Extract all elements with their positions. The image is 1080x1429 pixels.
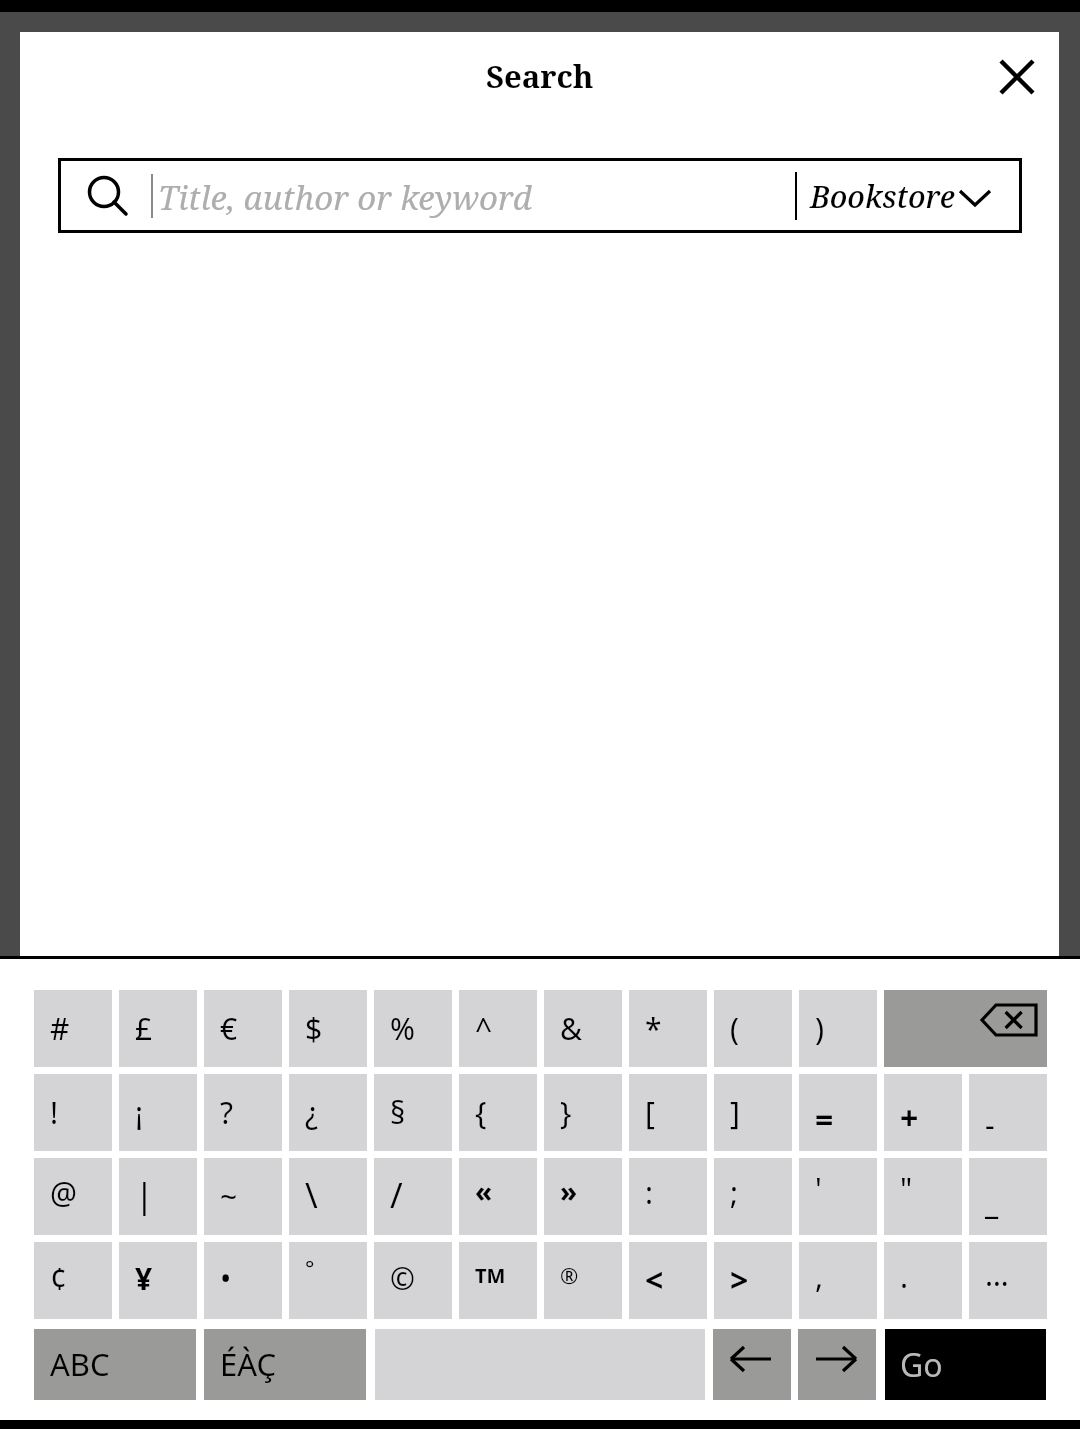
- staticText: $: [305, 1008, 323, 1049]
- button[interactable]: @: [34, 1158, 112, 1235]
- staticText: •: [220, 1258, 232, 1299]
- button[interactable]: Move cursor left: [713, 1329, 791, 1400]
- staticText: TM: [475, 1262, 506, 1289]
- staticText: ¥: [135, 1258, 153, 1299]
- button[interactable]: :: [629, 1158, 707, 1235]
- button[interactable]: Bookstore: [800, 162, 1016, 229]
- button[interactable]: [: [629, 1074, 707, 1151]
- button[interactable]: »: [544, 1158, 622, 1235]
- button[interactable]: {: [459, 1074, 537, 1151]
- staticText: Title, author or keyword: [158, 175, 532, 219]
- button[interactable]: ): [799, 990, 877, 1067]
- button[interactable]: \: [289, 1158, 367, 1235]
- button[interactable]: [61, 161, 1019, 230]
- staticText: »: [560, 1172, 578, 1210]
- staticText: {: [475, 1092, 487, 1133]
- staticText: -: [985, 1104, 995, 1145]
- staticText: |: [135, 1172, 154, 1218]
- button[interactable]: +: [884, 1074, 962, 1151]
- button[interactable]: Search: [420, 48, 660, 104]
- button[interactable]: ^: [459, 990, 537, 1067]
- button[interactable]: <: [629, 1242, 707, 1319]
- staticText: ,: [815, 1256, 824, 1297]
- button[interactable]: %: [374, 990, 452, 1067]
- button[interactable]: Go: [885, 1329, 1046, 1400]
- staticText: =: [815, 1098, 834, 1142]
- button[interactable]: …: [969, 1242, 1047, 1319]
- staticText: .: [900, 1256, 909, 1297]
- staticText: ^: [475, 1008, 493, 1049]
- button[interactable]: Close: [978, 46, 1056, 108]
- button[interactable]: ¿: [289, 1074, 367, 1151]
- staticText: Bookstore: [810, 176, 955, 217]
- staticText: >: [730, 1258, 749, 1302]
- staticText: _: [985, 1180, 999, 1224]
- button[interactable]: Backspace: [884, 990, 1047, 1067]
- button[interactable]: #: [34, 990, 112, 1067]
- staticText: &: [560, 1008, 582, 1049]
- button[interactable]: TM: [459, 1242, 537, 1319]
- staticText: @: [50, 1172, 77, 1213]
- button[interactable]: =: [799, 1074, 877, 1151]
- staticText: }: [560, 1092, 572, 1133]
- button[interactable]: «: [459, 1158, 537, 1235]
- button[interactable]: ": [884, 1158, 962, 1235]
- staticText: ©: [390, 1258, 415, 1299]
- button[interactable]: ¢: [34, 1242, 112, 1319]
- button[interactable]: ~: [204, 1158, 282, 1235]
- button[interactable]: ¥: [119, 1242, 197, 1319]
- staticText: °: [305, 1252, 315, 1282]
- button[interactable]: ®: [544, 1242, 622, 1319]
- button[interactable]: .: [884, 1242, 962, 1319]
- button[interactable]: !: [34, 1074, 112, 1151]
- staticText: §: [390, 1092, 406, 1133]
- staticText: £: [135, 1008, 153, 1049]
- staticText: ABC: [50, 1343, 110, 1385]
- button[interactable]: ©: [374, 1242, 452, 1319]
- staticText: +: [900, 1096, 919, 1140]
- staticText: ®: [560, 1260, 579, 1290]
- staticText: ;: [730, 1172, 739, 1213]
- button[interactable]: £: [119, 990, 197, 1067]
- button[interactable]: &: [544, 990, 622, 1067]
- button[interactable]: ;: [714, 1158, 792, 1235]
- button[interactable]: ,: [799, 1242, 877, 1319]
- staticText: ¢: [50, 1258, 68, 1299]
- staticText: ~: [220, 1176, 238, 1217]
- button[interactable]: ?: [204, 1074, 282, 1151]
- staticText: <: [645, 1258, 664, 1302]
- button[interactable]: ÉÀÇ: [204, 1329, 366, 1400]
- button[interactable]: •: [204, 1242, 282, 1319]
- staticText: *: [645, 1008, 662, 1049]
- staticText: ¡: [135, 1092, 144, 1133]
- button[interactable]: ABC: [34, 1329, 196, 1400]
- staticText: «: [475, 1172, 493, 1210]
- button[interactable]: ]: [714, 1074, 792, 1151]
- staticText: !: [50, 1092, 59, 1133]
- staticText: %: [390, 1008, 415, 1049]
- button[interactable]: |: [119, 1158, 197, 1235]
- staticText: ]: [730, 1092, 740, 1133]
- button[interactable]: §: [374, 1074, 452, 1151]
- staticText: Go: [900, 1343, 943, 1387]
- button[interactable]: €: [204, 990, 282, 1067]
- button[interactable]: Move cursor right: [798, 1329, 876, 1400]
- button[interactable]: >: [714, 1242, 792, 1319]
- staticText: :: [645, 1172, 654, 1213]
- button[interactable]: *: [629, 990, 707, 1067]
- button[interactable]: ¡: [119, 1074, 197, 1151]
- button[interactable]: /: [374, 1158, 452, 1235]
- button[interactable]: -: [969, 1074, 1047, 1151]
- staticText: …: [985, 1254, 1009, 1295]
- button[interactable]: _: [969, 1158, 1047, 1235]
- staticText: ': [815, 1168, 822, 1209]
- button[interactable]: (: [714, 990, 792, 1067]
- staticText: ÉÀÇ: [220, 1343, 277, 1385]
- button[interactable]: }: [544, 1074, 622, 1151]
- staticText: /: [390, 1172, 403, 1218]
- staticText: ¿: [305, 1092, 319, 1133]
- button[interactable]: ': [799, 1158, 877, 1235]
- button[interactable]: °: [289, 1242, 367, 1319]
- button[interactable]: $: [289, 990, 367, 1067]
